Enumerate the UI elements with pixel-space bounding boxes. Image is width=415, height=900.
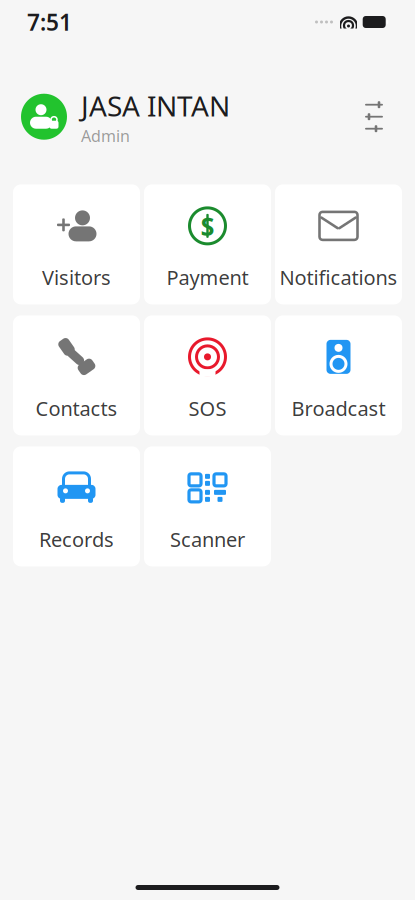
- button[interactable]: S: [144, 184, 271, 304]
- button[interactable]: Records: [13, 446, 140, 566]
- staticText: SOS: [188, 395, 226, 421]
- staticText: Visitors: [42, 264, 111, 290]
- staticText: JASA INTAN: [81, 87, 230, 124]
- button[interactable]: Notifications: [275, 184, 402, 304]
- staticText: Scanner: [170, 526, 245, 552]
- staticText: Records: [39, 526, 114, 552]
- button[interactable]: Settings: [354, 97, 394, 137]
- button[interactable]: JASA INTAN: [21, 87, 230, 146]
- staticText: Broadcast: [291, 395, 385, 421]
- staticText: S: [200, 209, 214, 243]
- staticText: 7:51: [27, 7, 72, 37]
- staticText: Contacts: [35, 395, 117, 421]
- button[interactable]: Scanner: [144, 446, 271, 566]
- button[interactable]: Contacts: [13, 315, 140, 435]
- staticText: Notifications: [279, 264, 397, 290]
- staticText: Admin: [81, 125, 130, 146]
- button[interactable]: Broadcast: [275, 315, 402, 435]
- button[interactable]: Visitors: [13, 184, 140, 304]
- staticText: Payment: [166, 264, 248, 290]
- button[interactable]: SOS: [144, 315, 271, 435]
